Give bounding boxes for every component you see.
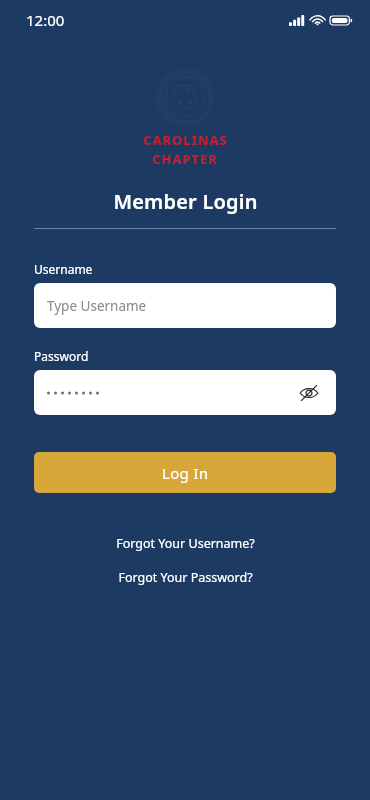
button[interactable]: Show password: [34, 370, 336, 415]
staticText: Forgot Your Password?: [118, 569, 253, 586]
staticText: Username: [34, 261, 93, 277]
staticText: Type Username: [47, 297, 147, 315]
button[interactable]: Type Username: [34, 283, 336, 328]
staticText: Member Login: [113, 188, 258, 215]
button[interactable]: Log In: [34, 452, 336, 493]
staticText: 12:00: [26, 10, 65, 30]
staticText: CHAPTER: [152, 150, 218, 168]
staticText: CAROLINAS: [143, 131, 228, 149]
button[interactable]: Forgot Your Password?: [0, 565, 370, 590]
button[interactable]: Show password: [296, 380, 322, 406]
staticText: Forgot Your Username?: [116, 535, 255, 552]
button[interactable]: Forgot Your Username?: [0, 531, 370, 556]
staticText: Password: [34, 348, 89, 364]
staticText: Log In: [162, 463, 209, 483]
